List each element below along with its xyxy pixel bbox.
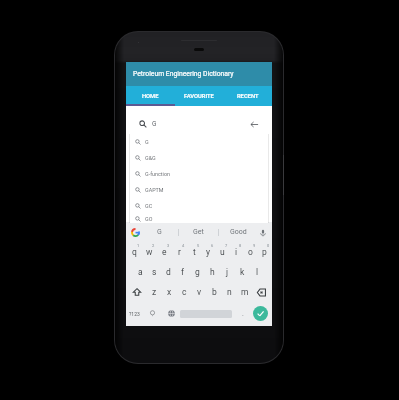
button[interactable]: FAVOURITE (174, 86, 223, 106)
button[interactable]: x (162, 282, 177, 302)
button[interactable]: Shift (127, 282, 147, 302)
staticText: 7 (225, 243, 228, 248)
staticText: ?123 (129, 311, 140, 317)
button[interactable]: G (140, 222, 178, 242)
button[interactable]: v (192, 282, 207, 302)
button[interactable]: j (220, 262, 235, 282)
staticText: t (193, 247, 196, 257)
staticText: Good (230, 228, 247, 236)
staticText: m (241, 287, 249, 297)
staticText: b (212, 287, 217, 297)
staticText: FAVOURITE (184, 93, 214, 100)
button[interactable]: i (229, 242, 243, 262)
staticText: a (138, 267, 143, 277)
staticText: Get (193, 228, 204, 236)
button[interactable]: s (147, 262, 161, 282)
staticText: G-function (145, 171, 170, 177)
staticText: f (181, 267, 184, 277)
staticText: d (166, 267, 171, 277)
staticText: y (206, 247, 211, 257)
button[interactable]: t (187, 242, 201, 262)
staticText: v (197, 287, 202, 297)
button[interactable]: Voice input (258, 228, 267, 237)
staticText: G (157, 228, 162, 236)
staticText: G (145, 139, 149, 145)
staticText: . (242, 310, 244, 318)
staticText: e (162, 247, 167, 257)
button[interactable]: HOME (126, 86, 174, 106)
button[interactable]: q (127, 242, 142, 262)
staticText: G&G (145, 155, 156, 161)
button[interactable]: c (177, 282, 192, 302)
staticText: 0 (267, 243, 270, 248)
button[interactable]: a (133, 262, 147, 282)
button[interactable]: p (257, 242, 271, 262)
button[interactable]: d (161, 262, 175, 282)
staticText: G (152, 120, 157, 128)
staticText: GC (145, 203, 153, 209)
staticText: 6 (211, 243, 214, 248)
staticText: w (146, 247, 153, 257)
staticText: x (167, 287, 172, 297)
staticText: HOME (142, 93, 159, 100)
button[interactable]: g (190, 262, 205, 282)
button[interactable]: b (207, 282, 222, 302)
staticText: l (256, 267, 259, 277)
button[interactable]: l (250, 262, 265, 282)
staticText: q (132, 247, 137, 257)
staticText: 3 (167, 243, 170, 248)
staticText: c (182, 287, 187, 297)
staticText: z (152, 287, 157, 297)
button[interactable]: m (237, 282, 252, 302)
staticText: RECENT (237, 93, 259, 100)
button[interactable]: Back (249, 119, 259, 129)
button[interactable]: Language (163, 302, 180, 325)
staticText: g (195, 267, 200, 277)
button[interactable]: r (172, 242, 187, 262)
button[interactable]: h (205, 262, 220, 282)
button[interactable]: k (235, 262, 250, 282)
button[interactable]: GAPTM (130, 182, 268, 198)
staticText: 5 (197, 243, 200, 248)
staticText: 2 (152, 243, 155, 248)
button[interactable]: G-function (130, 166, 268, 182)
button[interactable]: G&G (130, 150, 268, 166)
staticText: s (152, 267, 157, 277)
button[interactable]: GC (130, 198, 268, 214)
staticText: p (262, 247, 267, 257)
staticText: h (210, 267, 215, 277)
button[interactable]: z (147, 282, 162, 302)
staticText: 4 (182, 243, 185, 248)
staticText: o (248, 247, 253, 257)
staticText: i (235, 247, 238, 257)
button[interactable]: u (215, 242, 229, 262)
button[interactable]: o (243, 242, 257, 262)
button[interactable]: Get (179, 222, 218, 242)
button[interactable]: f (175, 262, 190, 282)
button[interactable]: GO (130, 214, 268, 223)
button[interactable]: Backspace (252, 282, 271, 302)
staticText: 9 (253, 243, 256, 248)
button[interactable]: Emoji (142, 302, 163, 325)
staticText: 8 (239, 243, 242, 248)
staticText: j (226, 267, 229, 277)
button[interactable]: ?123 (126, 302, 142, 325)
button[interactable]: Good (219, 222, 258, 242)
button[interactable]: y (201, 242, 215, 262)
staticText: r (178, 247, 181, 257)
button[interactable]: G (130, 134, 268, 150)
staticText: Petroleum Engineering Dictionary (133, 70, 234, 78)
staticText: k (240, 267, 245, 277)
staticText: u (220, 247, 225, 257)
staticText: n (227, 287, 232, 297)
button[interactable]: Enter (253, 306, 268, 321)
staticText: GAPTM (145, 187, 164, 193)
button[interactable]: e (157, 242, 172, 262)
staticText: 1 (137, 243, 140, 248)
button[interactable]: w (142, 242, 157, 262)
button[interactable]: RECENT (223, 86, 272, 106)
staticText: GO (145, 216, 153, 222)
button[interactable]: n (222, 282, 237, 302)
